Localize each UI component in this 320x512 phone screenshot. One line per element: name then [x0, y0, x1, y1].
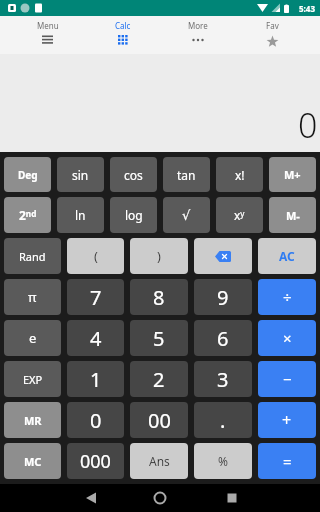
button[interactable]: Ans [130, 443, 188, 479]
staticText: = [283, 451, 292, 471]
staticText: ln [75, 207, 86, 223]
button[interactable]: × [258, 320, 316, 356]
button[interactable] [194, 238, 252, 274]
staticText: 0 [90, 407, 102, 434]
button[interactable]: 2 [130, 361, 188, 397]
button[interactable]: % [194, 443, 252, 479]
button[interactable]: 2nd [4, 197, 51, 233]
button[interactable]: 00 [130, 402, 188, 438]
staticText: MR [24, 413, 42, 428]
button[interactable]: Fav [235, 16, 310, 54]
staticText: M+ [284, 167, 301, 182]
button[interactable]: EXP [4, 361, 61, 397]
staticText: x! [235, 167, 245, 183]
button[interactable]: 3 [194, 361, 252, 397]
staticText: Fav [266, 20, 279, 31]
staticText: Rand [19, 249, 46, 264]
staticText: AC [279, 248, 295, 264]
staticText: tan [177, 167, 196, 183]
staticText: 000 [80, 449, 111, 474]
button[interactable]: ( [67, 238, 124, 274]
staticText: . [220, 407, 226, 434]
button[interactable]: 7 [67, 279, 124, 315]
staticText: √ [182, 208, 191, 223]
staticText: 4 [90, 325, 102, 352]
staticText: EXP [23, 372, 43, 387]
staticText: 3 [217, 366, 229, 393]
button[interactable]: 0 [67, 402, 124, 438]
staticText: ÷ [283, 287, 292, 307]
button[interactable]: Rand [4, 238, 61, 274]
button[interactable]: + [258, 402, 316, 438]
button[interactable]: log [110, 197, 157, 233]
staticText: ( [94, 247, 98, 265]
button[interactable]: Deg [4, 157, 51, 192]
staticText: cos [124, 167, 143, 183]
button[interactable]: Calc [85, 16, 160, 54]
staticText: sin [72, 167, 89, 183]
button[interactable]: 6 [194, 320, 252, 356]
staticText: Deg [18, 168, 38, 182]
button[interactable]: Menu [10, 16, 85, 54]
button[interactable]: 9 [194, 279, 252, 315]
button[interactable]: cos [110, 157, 157, 192]
staticText: 2nd [19, 207, 37, 223]
staticText: M- [286, 208, 300, 223]
button[interactable]: xy [216, 197, 263, 233]
button[interactable]: e [4, 320, 61, 356]
button[interactable]: ÷ [258, 279, 316, 315]
staticText: 8 [153, 284, 165, 311]
staticText: 5 [153, 325, 165, 352]
staticText: ) [157, 247, 161, 265]
button[interactable]: 4 [67, 320, 124, 356]
button[interactable]: π [4, 279, 61, 315]
button[interactable]: 5 [130, 320, 188, 356]
staticText: Menu [37, 20, 59, 31]
staticText: + [282, 409, 292, 431]
staticText: 1 [90, 366, 102, 393]
staticText: MC [24, 454, 42, 469]
staticText: 2 [153, 366, 165, 393]
button[interactable]: x! [216, 157, 263, 192]
button[interactable]: . [194, 402, 252, 438]
button[interactable]: 1 [67, 361, 124, 397]
staticText: % [218, 453, 228, 469]
button[interactable]: sin [57, 157, 104, 192]
staticText: 6 [217, 325, 229, 352]
staticText: 9 [217, 284, 229, 311]
staticText: 00 [148, 407, 171, 434]
staticText: 0 [298, 102, 318, 148]
staticText: π [28, 288, 37, 306]
button[interactable]: = [258, 443, 316, 479]
button[interactable]: √ [163, 197, 210, 233]
button[interactable]: MR [4, 402, 61, 438]
button[interactable]: tan [163, 157, 210, 192]
button[interactable]: AC [258, 238, 316, 274]
staticText: log [125, 207, 143, 223]
staticText: e [29, 329, 37, 347]
button[interactable]: M- [269, 197, 316, 233]
button[interactable]: More [160, 16, 235, 54]
button[interactable]: M+ [269, 157, 316, 192]
button[interactable]: MC [4, 443, 61, 479]
button[interactable]: ) [130, 238, 188, 274]
staticText: Ans [149, 453, 170, 469]
button[interactable]: − [258, 361, 316, 397]
staticText: × [283, 328, 292, 348]
staticText: Calc [115, 20, 131, 31]
staticText: − [283, 369, 292, 389]
staticText: 7 [90, 284, 102, 311]
staticText: 5:43 [299, 3, 315, 14]
button[interactable]: ln [57, 197, 104, 233]
button[interactable]: 000 [67, 443, 124, 479]
button[interactable]: 8 [130, 279, 188, 315]
staticText: More [188, 20, 208, 31]
staticText: xy [234, 207, 245, 223]
